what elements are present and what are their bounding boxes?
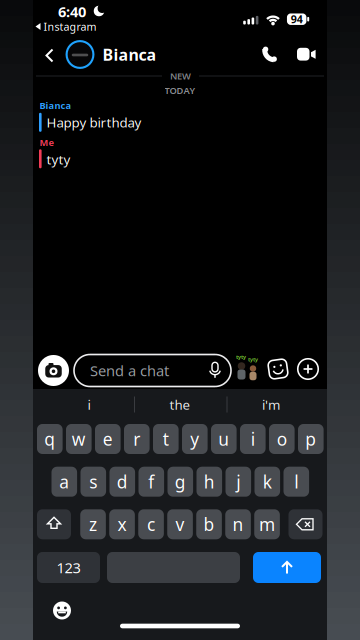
staticText: c bbox=[147, 513, 155, 536]
staticText: f bbox=[148, 470, 154, 493]
staticText: t bbox=[163, 427, 169, 450]
button[interactable]: the bbox=[136, 392, 224, 417]
button[interactable]: t bbox=[153, 424, 179, 454]
staticText: the bbox=[169, 396, 190, 413]
staticText: n bbox=[233, 513, 244, 536]
staticText: d bbox=[117, 470, 128, 493]
button[interactable]: Back to Instagram bbox=[35, 19, 96, 34]
button[interactable]: l bbox=[283, 467, 309, 497]
button[interactable]: Video call bbox=[297, 47, 316, 61]
button[interactable]: z bbox=[80, 509, 106, 539]
staticText: k bbox=[263, 470, 272, 493]
button[interactable]: i bbox=[240, 424, 266, 454]
staticText: i bbox=[87, 396, 90, 413]
staticText: e bbox=[103, 427, 113, 450]
staticText: i bbox=[251, 427, 255, 450]
button[interactable]: g bbox=[167, 467, 193, 497]
button[interactable]: Camera bbox=[38, 355, 69, 386]
staticText: Me bbox=[39, 136, 54, 149]
button[interactable]: y bbox=[182, 424, 208, 454]
button[interactable]: k bbox=[254, 467, 280, 497]
button[interactable]: Bitmoji sticker bbox=[234, 354, 260, 384]
button[interactable]: r bbox=[124, 424, 150, 454]
staticText: p bbox=[305, 427, 316, 450]
staticText: u bbox=[218, 427, 229, 450]
button[interactable]: j bbox=[225, 467, 251, 497]
button[interactable]: a bbox=[51, 467, 77, 497]
button[interactable]: u bbox=[211, 424, 237, 454]
button[interactable]: o bbox=[269, 424, 295, 454]
button[interactable]: s bbox=[80, 467, 106, 497]
staticText: w bbox=[72, 427, 86, 450]
staticText: tyty bbox=[248, 356, 258, 363]
staticText: z bbox=[89, 513, 97, 536]
staticText: i'm bbox=[262, 396, 280, 413]
button[interactable]: b bbox=[196, 509, 222, 539]
button[interactable]: c bbox=[138, 509, 164, 539]
button[interactable]: h bbox=[196, 467, 222, 497]
staticText: Bianca bbox=[39, 99, 71, 112]
staticText: Happy birthday bbox=[46, 113, 141, 131]
staticText: 94 bbox=[291, 12, 303, 26]
button[interactable]: p bbox=[298, 424, 324, 454]
button[interactable]: n bbox=[225, 509, 251, 539]
button[interactable]: i'm bbox=[225, 392, 317, 417]
staticText: v bbox=[176, 513, 185, 536]
staticText: Bianca bbox=[102, 44, 156, 65]
staticText: tyty bbox=[236, 353, 246, 361]
staticText: l bbox=[294, 470, 298, 493]
staticText: g bbox=[175, 470, 186, 493]
staticText: tyty bbox=[46, 150, 70, 168]
button[interactable]: Delete bbox=[288, 509, 322, 539]
staticText: a bbox=[59, 470, 69, 493]
button[interactable]: v bbox=[167, 509, 193, 539]
button[interactable]: Shift bbox=[37, 509, 71, 539]
staticText: 6:40 bbox=[58, 2, 86, 21]
button[interactable]: Send a chat bbox=[74, 354, 231, 386]
button[interactable]: d bbox=[109, 467, 135, 497]
button[interactable]: Back bbox=[45, 48, 54, 62]
button[interactable]: f bbox=[138, 467, 164, 497]
staticText: o bbox=[277, 427, 287, 450]
button[interactable]: e bbox=[95, 424, 121, 454]
staticText: Instagram bbox=[43, 19, 96, 34]
button[interactable]: i bbox=[43, 392, 135, 417]
staticText: NEW bbox=[170, 70, 191, 82]
button[interactable]: q bbox=[37, 424, 63, 454]
button[interactable]: Emoji bbox=[53, 601, 71, 619]
button[interactable]: w bbox=[66, 424, 92, 454]
button[interactable]: Call bbox=[260, 44, 280, 64]
staticText: y bbox=[190, 427, 199, 450]
button[interactable]: m bbox=[254, 509, 280, 539]
staticText: TODAY bbox=[164, 84, 195, 97]
staticText: Send a chat bbox=[90, 361, 169, 380]
staticText: x bbox=[117, 513, 126, 536]
button[interactable]: Send bbox=[253, 552, 321, 583]
staticText: h bbox=[204, 470, 215, 493]
staticText: 123 bbox=[56, 558, 80, 577]
staticText: j bbox=[236, 470, 240, 493]
staticText: q bbox=[44, 427, 55, 450]
button[interactable]: More bbox=[298, 359, 318, 379]
button[interactable]: 123 bbox=[37, 552, 100, 583]
staticText: b bbox=[204, 513, 215, 536]
button[interactable]: Stickers bbox=[266, 357, 290, 381]
staticText: m bbox=[259, 513, 275, 536]
button[interactable]: x bbox=[109, 509, 135, 539]
staticText: s bbox=[89, 470, 97, 493]
staticText: r bbox=[133, 427, 140, 450]
button[interactable]: Bianca profile bbox=[65, 40, 156, 69]
